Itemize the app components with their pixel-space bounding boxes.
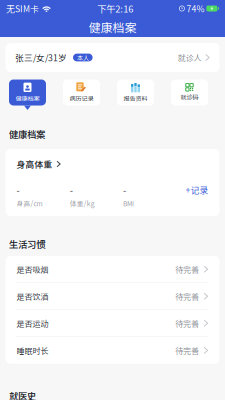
staticText: 张三/女/31岁 <box>15 51 67 64</box>
staticText: 待完善 <box>175 290 199 302</box>
staticText: - <box>70 183 73 196</box>
staticText: 生活习惯 <box>9 237 45 251</box>
staticText: 是否吸烟 <box>16 263 48 275</box>
staticText: 健康档案 <box>15 94 39 103</box>
button[interactable]: 病历记录 <box>63 79 100 110</box>
staticText: 身高体重 <box>16 158 52 170</box>
button[interactable]: 身高体重 <box>16 158 61 170</box>
staticText: 下午2:16 <box>97 2 133 15</box>
button[interactable]: 是否饮酒 <box>5 283 219 310</box>
staticText: - <box>16 183 19 196</box>
staticText: +记录 <box>185 183 208 196</box>
staticText: 睡眠时长 <box>16 345 48 356</box>
button[interactable]: 报告资料 <box>117 79 154 110</box>
staticText: - <box>123 183 126 196</box>
staticText: 就医史 <box>9 389 36 400</box>
button[interactable]: 张三/女/31岁 <box>5 43 219 72</box>
staticText: 待完善 <box>175 345 199 356</box>
button[interactable]: 是否吸烟 <box>5 256 219 283</box>
staticText: 健康档案 <box>88 18 136 36</box>
button[interactable]: +记录 <box>185 183 208 196</box>
staticText: 身高/cm <box>16 198 42 208</box>
staticText: 就诊码 <box>180 93 198 101</box>
staticText: 健康档案 <box>9 127 45 141</box>
staticText: 待完善 <box>175 317 199 329</box>
button[interactable]: 睡眠时长 <box>5 337 219 364</box>
staticText: BMI <box>123 198 134 208</box>
button[interactable]: 是否运动 <box>5 310 219 337</box>
staticText: 是否运动 <box>16 317 48 329</box>
button[interactable]: 就诊码 <box>171 79 208 110</box>
staticText: 体重/kg <box>70 198 95 208</box>
staticText: 待完善 <box>175 263 199 275</box>
staticText: 74% <box>186 2 204 15</box>
staticText: 本人 <box>77 53 89 62</box>
staticText: 无SIM卡 <box>6 2 39 15</box>
staticText: 报告资料 <box>123 94 147 103</box>
staticText: 病历记录 <box>69 94 93 103</box>
button[interactable]: 健康档案 <box>9 79 46 110</box>
staticText: 就诊人 <box>178 52 202 63</box>
staticText: 是否饮酒 <box>16 290 48 302</box>
